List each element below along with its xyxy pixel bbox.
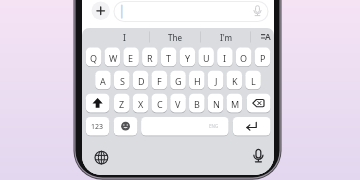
staticText: G — [175, 75, 182, 87]
staticText: X — [138, 98, 144, 110]
staticText: O — [240, 52, 248, 64]
staticText: F — [157, 75, 162, 87]
staticText: ENG — [209, 123, 219, 129]
staticText: P — [260, 52, 266, 64]
staticText: C — [157, 98, 163, 110]
staticText: Z — [119, 98, 125, 110]
staticText: N — [213, 98, 220, 110]
staticText: E — [128, 52, 134, 64]
staticText: V — [175, 98, 181, 110]
staticText: I — [123, 32, 126, 43]
staticText: I'm — [220, 32, 233, 43]
staticText: S — [120, 75, 125, 87]
staticText: W — [109, 52, 118, 64]
staticText: R — [147, 52, 153, 64]
staticText: J — [215, 75, 218, 87]
staticText: H — [194, 75, 201, 87]
staticText: L — [251, 75, 256, 87]
staticText: A — [265, 31, 271, 43]
staticText: U — [203, 52, 210, 64]
staticText: A — [100, 75, 106, 87]
staticText: I — [223, 52, 227, 64]
staticText: T — [166, 52, 172, 64]
staticText: The — [168, 32, 183, 43]
staticText: B — [194, 98, 200, 110]
staticText: K — [232, 75, 238, 87]
staticText: M — [231, 98, 240, 110]
staticText: Y — [185, 52, 191, 64]
staticText: Q — [90, 52, 98, 64]
staticText: 123 — [91, 122, 104, 132]
staticText: D — [138, 75, 145, 87]
